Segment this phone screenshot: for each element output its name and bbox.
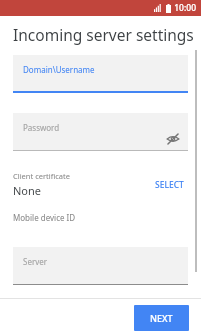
staticText: Client certificate [13,171,70,181]
staticText: Password [23,122,60,133]
staticText: Domain\Username [23,64,95,75]
staticText: Incoming server settings [13,24,194,45]
staticText: Server [23,256,48,267]
staticText: Mobile device ID [13,212,76,223]
button[interactable]: SELECT [151,175,188,195]
staticText: None [13,183,42,198]
staticText: 10:00 [174,2,196,14]
staticText: NEXT [150,312,173,324]
button[interactable]: NEXT [134,305,189,331]
button[interactable]: Domain\Username [13,55,188,93]
button[interactable]: Password [13,113,188,151]
button[interactable]: Show password [164,130,182,148]
button[interactable]: Server [13,247,188,285]
staticText: SELECT [155,179,184,191]
